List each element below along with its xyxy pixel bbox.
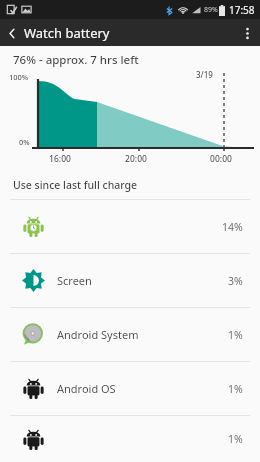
button[interactable]: 1% <box>0 416 260 462</box>
staticText: 00:00 <box>210 153 232 165</box>
staticText: 0% <box>19 137 30 147</box>
staticText: 14% <box>222 220 243 234</box>
button[interactable]: More options <box>234 20 260 46</box>
button[interactable]: Back <box>0 21 24 45</box>
staticText: Watch battery <box>24 24 110 42</box>
staticText: 76% - approx. 7 hrs left <box>13 52 139 68</box>
button[interactable]: Android System <box>0 308 260 361</box>
staticText: 16:00 <box>49 153 71 165</box>
staticText: 17:58 <box>229 3 255 17</box>
staticText: 1% <box>228 328 243 342</box>
staticText: 89% <box>204 5 218 15</box>
staticText: Use since last full charge <box>13 178 138 192</box>
staticText: 3/19 <box>196 69 213 80</box>
staticText: 20:00 <box>125 153 147 165</box>
button[interactable]: 14% <box>0 200 260 253</box>
staticText: 3% <box>228 274 243 288</box>
staticText: Android OS <box>57 381 116 396</box>
button[interactable]: Android OS <box>0 362 260 415</box>
staticText: 1% <box>228 432 243 446</box>
staticText: Android System <box>57 327 139 342</box>
staticText: 1% <box>228 382 243 396</box>
staticText: Screen <box>57 273 92 288</box>
staticText: 100% <box>9 72 29 82</box>
button[interactable]: Screen <box>0 254 260 307</box>
